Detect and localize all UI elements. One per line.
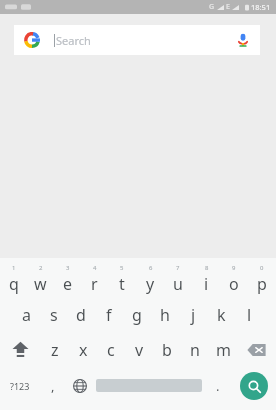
staticText: G xyxy=(209,2,215,12)
staticText: t xyxy=(119,273,125,295)
staticText: 6 xyxy=(149,264,153,272)
button[interactable]: b xyxy=(153,332,181,367)
staticText: 0 xyxy=(260,264,264,272)
button[interactable]: Backspace xyxy=(237,332,276,367)
staticText: s xyxy=(50,304,58,326)
staticText: j xyxy=(191,304,196,326)
staticText: y xyxy=(146,273,155,295)
button[interactable]: , xyxy=(40,367,66,404)
button[interactable]: 6 xyxy=(136,262,164,297)
button[interactable]: Space xyxy=(96,373,202,398)
staticText: Search xyxy=(56,33,91,48)
button[interactable]: l xyxy=(235,297,263,332)
button[interactable]: f xyxy=(95,297,123,332)
staticText: E xyxy=(226,2,230,12)
button[interactable]: d xyxy=(67,297,95,332)
staticText: u xyxy=(173,273,183,295)
button[interactable]: 7 xyxy=(164,262,192,297)
staticText: k xyxy=(217,304,226,326)
staticText: l xyxy=(247,304,252,326)
staticText: v xyxy=(135,339,144,361)
staticText: b xyxy=(162,339,172,361)
staticText: 9 xyxy=(232,264,236,272)
staticText: h xyxy=(160,304,170,326)
button[interactable]: x xyxy=(69,332,97,367)
staticText: q xyxy=(9,273,19,295)
staticText: n xyxy=(190,339,200,361)
button[interactable]: g xyxy=(123,297,151,332)
staticText: p xyxy=(257,273,267,295)
staticText: 1 xyxy=(12,264,16,272)
button[interactable]: 0 xyxy=(248,262,276,297)
staticText: z xyxy=(51,339,59,361)
staticText: 2 xyxy=(39,264,43,272)
button[interactable]: Shift xyxy=(0,332,40,367)
staticText: 18:51 xyxy=(251,2,271,12)
other: Google xyxy=(24,32,40,48)
other: Voice search xyxy=(236,33,250,47)
button[interactable]: m xyxy=(209,332,237,367)
button[interactable]: 5 xyxy=(108,262,136,297)
staticText: i xyxy=(204,273,209,295)
button[interactable]: 1 xyxy=(0,262,27,297)
staticText: 8 xyxy=(205,264,209,272)
button[interactable]: n xyxy=(181,332,209,367)
staticText: . xyxy=(216,377,220,395)
staticText: 5 xyxy=(120,264,124,272)
button[interactable]: . xyxy=(204,367,232,404)
staticText: 3 xyxy=(66,264,70,272)
button[interactable]: s xyxy=(40,297,67,332)
staticText: x xyxy=(79,339,88,361)
staticText: 7 xyxy=(176,264,180,272)
staticText: a xyxy=(22,304,31,326)
staticText: , xyxy=(51,377,55,395)
button[interactable]: Change language xyxy=(66,367,94,404)
staticText: m xyxy=(216,339,231,361)
staticText: 4 xyxy=(93,264,97,272)
staticText: w xyxy=(34,273,47,295)
button[interactable]: a xyxy=(13,297,40,332)
button[interactable]: 3 xyxy=(54,262,81,297)
button[interactable]: h xyxy=(151,297,179,332)
button[interactable]: v xyxy=(125,332,153,367)
staticText: e xyxy=(63,273,73,295)
button[interactable]: k xyxy=(207,297,235,332)
staticText: ?123 xyxy=(10,380,30,392)
button[interactable]: ?123 xyxy=(0,367,40,404)
button[interactable]: 2 xyxy=(27,262,54,297)
button[interactable]: 9 xyxy=(220,262,248,297)
staticText: g xyxy=(132,304,142,326)
staticText: o xyxy=(229,273,239,295)
button[interactable]: z xyxy=(40,332,69,367)
staticText: d xyxy=(76,304,86,326)
button[interactable]: Search xyxy=(232,367,276,404)
staticText: f xyxy=(106,304,112,326)
button[interactable]: j xyxy=(179,297,207,332)
staticText: c xyxy=(107,339,115,361)
button[interactable]: Google xyxy=(14,25,260,55)
button[interactable]: 8 xyxy=(192,262,220,297)
button[interactable]: 4 xyxy=(81,262,108,297)
button[interactable]: c xyxy=(97,332,125,367)
staticText: r xyxy=(91,273,98,295)
